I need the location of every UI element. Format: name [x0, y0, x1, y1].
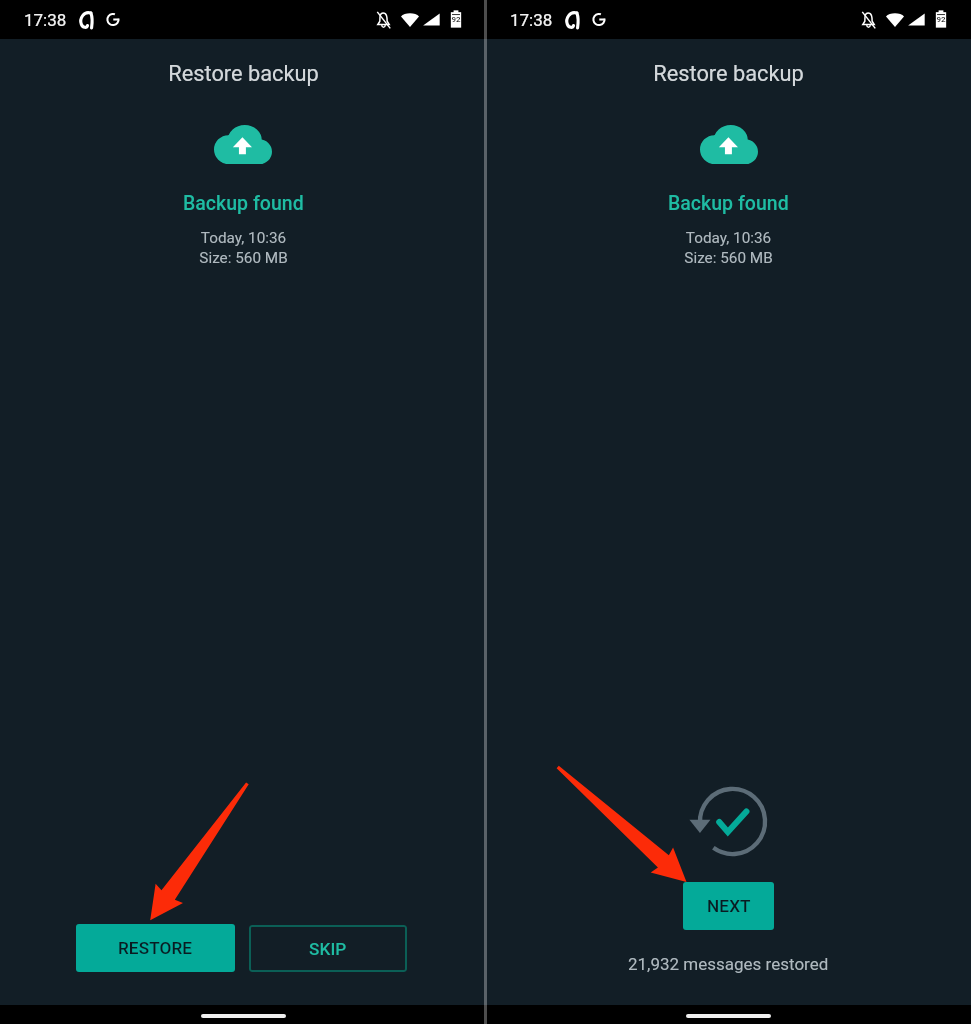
staticText: Restore backup: [168, 61, 319, 87]
button[interactable]: RESTORE: [76, 924, 235, 972]
staticText: Today, 10:36 Size: 560 MB: [199, 229, 288, 267]
button[interactable]: SKIP: [249, 925, 407, 972]
staticText: 92: [451, 15, 461, 24]
staticText: Restore backup: [653, 61, 804, 87]
staticText: Backup found: [668, 192, 789, 215]
staticText: 92: [936, 15, 946, 24]
staticText: Today, 10:36 Size: 560 MB: [684, 229, 773, 267]
staticText: NEXT: [707, 896, 751, 916]
staticText: 17:38: [510, 10, 553, 30]
staticText: 17:38: [24, 10, 67, 30]
staticText: Backup found: [183, 192, 304, 215]
staticText: SKIP: [309, 939, 347, 959]
button[interactable]: NEXT: [683, 882, 774, 930]
staticText: 21,932 messages restored: [628, 954, 829, 974]
staticText: RESTORE: [118, 938, 193, 958]
